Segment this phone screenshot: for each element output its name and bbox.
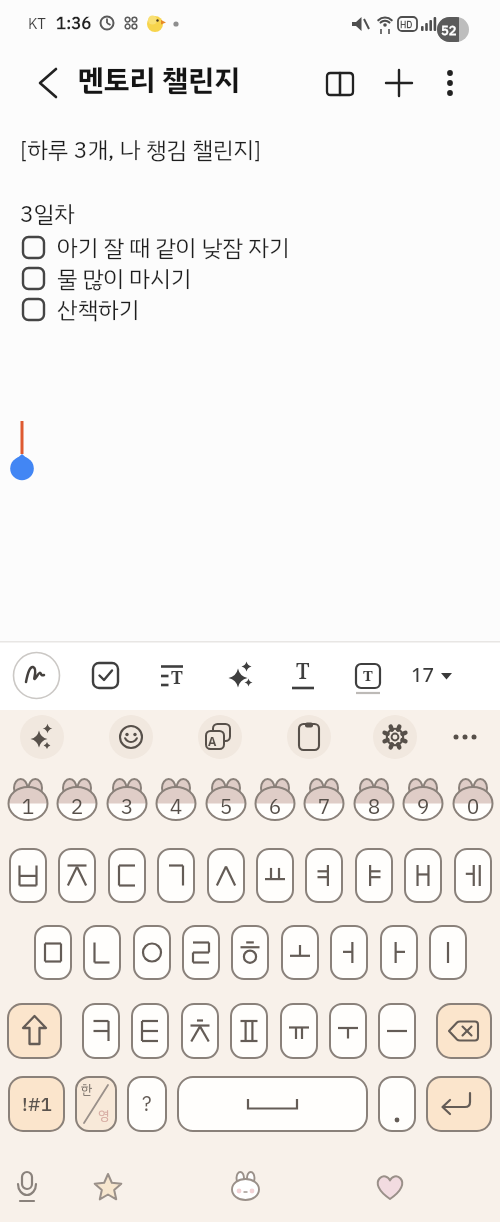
button[interactable]: [330, 925, 368, 980]
button[interactable]: [322, 66, 358, 102]
staticText: T: [296, 657, 310, 686]
button[interactable]: 아기 잘 때 같이 낮잠 자기: [20, 230, 320, 260]
button[interactable]: [82, 1003, 120, 1059]
button[interactable]: [13, 652, 60, 699]
button[interactable]: [281, 925, 319, 980]
button[interactable]: [7, 1003, 62, 1059]
staticText: 멘토리 챌린지: [78, 59, 241, 103]
button[interactable]: 0: [448, 772, 498, 828]
button[interactable]: [88, 1168, 128, 1212]
staticText: 4: [151, 791, 201, 847]
button[interactable]: [436, 1003, 492, 1059]
button[interactable]: T: [152, 655, 192, 695]
button[interactable]: 5: [201, 772, 251, 828]
staticText: T: [171, 665, 183, 690]
button[interactable]: [9, 848, 47, 903]
button[interactable]: 7: [299, 772, 349, 828]
button[interactable]: 물 많이 마시기: [20, 261, 320, 291]
staticText: 8: [349, 791, 399, 847]
button[interactable]: [133, 925, 171, 980]
button[interactable]: [380, 925, 418, 980]
button[interactable]: !#1: [8, 1076, 65, 1132]
button[interactable]: 4: [151, 772, 201, 828]
button[interactable]: [231, 925, 269, 980]
button[interactable]: [280, 1003, 318, 1059]
button[interactable]: [83, 925, 121, 980]
button[interactable]: [20, 715, 64, 759]
button[interactable]: [434, 66, 466, 100]
staticText: 산책하기: [57, 293, 140, 323]
button[interactable]: [443, 715, 487, 759]
button[interactable]: 한: [75, 1076, 117, 1132]
staticText: !#1: [22, 1090, 52, 1119]
button[interactable]: [182, 925, 220, 980]
staticText: 0: [448, 791, 498, 847]
staticText: 2: [52, 791, 102, 847]
button[interactable]: 산책하기: [20, 292, 320, 322]
staticText: [하루 3개, 나 챙김 챌린지]: [20, 133, 261, 168]
button[interactable]: [355, 848, 393, 903]
staticText: 영: [98, 1106, 110, 1126]
button[interactable]: 3: [102, 772, 152, 828]
button[interactable]: [370, 1168, 410, 1212]
staticText: 52: [441, 21, 457, 41]
button[interactable]: [181, 1003, 219, 1059]
button[interactable]: [157, 848, 195, 903]
button[interactable]: 6: [250, 772, 300, 828]
button[interactable]: [426, 1076, 492, 1132]
staticText: 6: [250, 791, 300, 847]
button[interactable]: [109, 715, 153, 759]
staticText: 5: [201, 791, 251, 847]
staticText: KT: [28, 13, 46, 36]
button[interactable]: [131, 1003, 169, 1059]
button[interactable]: [429, 925, 467, 980]
staticText: 9: [398, 791, 448, 847]
button[interactable]: [226, 1168, 266, 1212]
staticText: 물 많이 마시기: [57, 262, 191, 292]
button[interactable]: [454, 848, 492, 903]
staticText: 아기 잘 때 같이 낮잠 자기: [57, 231, 290, 261]
staticText: A: [208, 733, 217, 749]
button[interactable]: [378, 1076, 416, 1132]
button[interactable]: [378, 1003, 416, 1059]
staticText: 7: [299, 791, 349, 847]
button[interactable]: 8: [349, 772, 399, 828]
staticText: 1:36: [56, 11, 92, 36]
staticText: 1: [3, 791, 53, 847]
button[interactable]: [58, 848, 96, 903]
button[interactable]: [207, 848, 245, 903]
staticText: HD: [400, 18, 413, 32]
staticText: 3: [102, 791, 152, 847]
button[interactable]: [404, 848, 442, 903]
button[interactable]: [177, 1076, 368, 1132]
button[interactable]: [382, 66, 416, 100]
button[interactable]: ?: [127, 1076, 167, 1132]
button[interactable]: T: [283, 655, 323, 695]
button[interactable]: [32, 66, 66, 100]
staticText: ?: [142, 1089, 152, 1119]
button[interactable]: [220, 655, 260, 695]
button[interactable]: [108, 848, 146, 903]
button[interactable]: 17: [405, 655, 461, 695]
button[interactable]: [198, 715, 242, 759]
button[interactable]: 2: [52, 772, 102, 828]
button[interactable]: [86, 655, 126, 695]
button[interactable]: 1: [3, 772, 53, 828]
button[interactable]: [34, 925, 72, 980]
button[interactable]: [7, 1168, 47, 1212]
button[interactable]: [287, 715, 331, 759]
staticText: 한: [81, 1080, 93, 1100]
button[interactable]: [373, 715, 417, 759]
staticText: 3일차: [20, 197, 75, 232]
button[interactable]: [329, 1003, 367, 1059]
staticText: T: [363, 665, 373, 685]
button[interactable]: 9: [398, 772, 448, 828]
staticText: 17: [411, 661, 434, 688]
button[interactable]: [305, 848, 343, 903]
button[interactable]: [256, 848, 294, 903]
button[interactable]: T: [348, 655, 388, 695]
button[interactable]: [230, 1003, 268, 1059]
